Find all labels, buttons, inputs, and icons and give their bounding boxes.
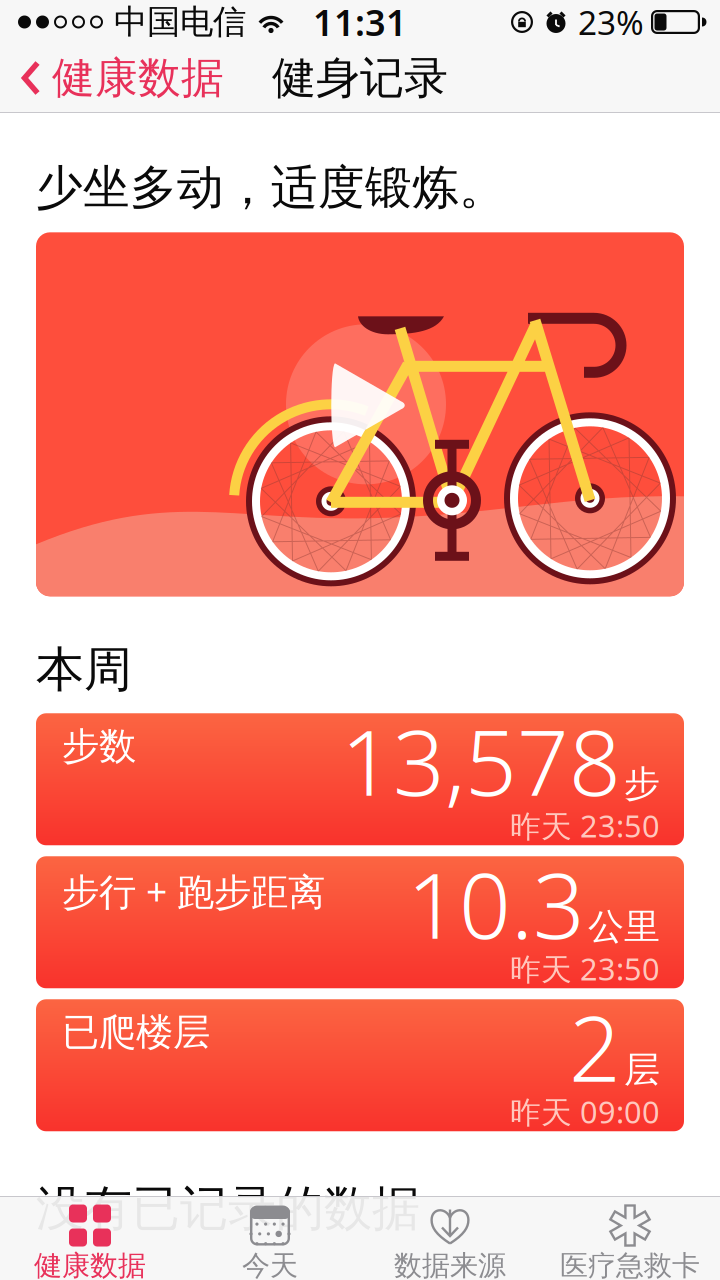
button[interactable] <box>36 232 684 596</box>
button[interactable]: 数据来源 <box>360 1196 540 1280</box>
button[interactable]: 健康数据 <box>0 1196 180 1280</box>
staticText: 层 <box>624 1048 660 1092</box>
staticText: 昨天 09:00 <box>510 1091 660 1132</box>
staticText: 健康数据 <box>34 1248 146 1280</box>
staticText: 数据来源 <box>394 1248 506 1280</box>
button[interactable]: 步数 <box>36 713 684 845</box>
staticText: 步行 + 跑步距离 <box>62 866 325 916</box>
button[interactable]: 步行 + 跑步距离 <box>36 856 684 988</box>
staticText: 少坐多动，适度锻炼。 <box>36 159 506 216</box>
staticText: 没有已记录的数据 <box>36 1179 420 1238</box>
staticText: 健康数据 <box>52 52 224 104</box>
button[interactable]: 健康数据 <box>0 44 238 112</box>
staticText: 医疗急救卡 <box>560 1248 700 1280</box>
staticText: 2 <box>569 986 621 1107</box>
staticText: 步数 <box>62 723 136 769</box>
button[interactable]: 已爬楼层 <box>36 999 684 1131</box>
staticText: 今天 <box>242 1248 298 1280</box>
staticText: 公里 <box>588 905 660 949</box>
staticText: 本周 <box>36 640 132 699</box>
staticText: 11:31 <box>313 0 407 46</box>
staticText: 13,578 <box>341 700 621 821</box>
button[interactable]: 今天 <box>180 1196 360 1280</box>
staticText: 已爬楼层 <box>62 1009 210 1055</box>
button[interactable]: 医疗急救卡 <box>540 1196 720 1280</box>
staticText: 健身记录 <box>272 51 448 105</box>
staticText: 昨天 23:50 <box>510 805 660 846</box>
staticText: 10.3 <box>407 843 585 964</box>
staticText: 中国电信 <box>114 1 246 42</box>
staticText: 23% <box>578 0 644 44</box>
staticText: 步 <box>624 762 660 806</box>
staticText: 昨天 23:50 <box>510 948 660 989</box>
